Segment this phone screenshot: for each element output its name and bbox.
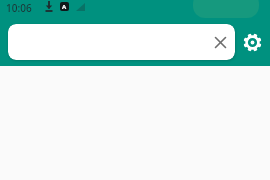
button[interactable] [240,30,265,55]
button[interactable] [8,24,235,60]
button[interactable] [215,37,226,48]
staticText: A [62,3,67,11]
staticText: 10:06 [6,1,32,15]
